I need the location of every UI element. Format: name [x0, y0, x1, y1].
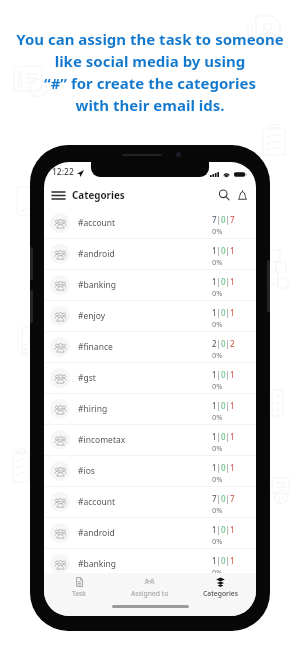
staticText: 2|0|2	[212, 338, 235, 349]
button[interactable]: Search	[215, 186, 233, 204]
button[interactable]: #account	[44, 487, 256, 518]
button[interactable]: #hiring	[44, 394, 256, 425]
button[interactable]: Menu	[49, 185, 67, 205]
staticText: 0%	[212, 474, 223, 484]
staticText: 0%	[212, 567, 223, 577]
staticText: 7|0|7	[212, 493, 235, 504]
staticText: #banking	[78, 279, 116, 291]
staticText: 0%	[212, 288, 223, 298]
staticText: 1|0|1	[212, 431, 235, 442]
button[interactable]: #gst	[44, 363, 256, 394]
button[interactable]: Task	[44, 577, 114, 602]
staticText: #incometax	[78, 434, 126, 446]
staticText: 1|0|1	[212, 400, 235, 411]
button[interactable]: #banking	[44, 270, 256, 301]
button[interactable]: #incometax	[44, 425, 256, 456]
staticText: Task	[72, 589, 86, 598]
button[interactable]: #android	[44, 239, 256, 270]
staticText: #account	[78, 496, 116, 508]
button[interactable]: #ios	[44, 456, 256, 487]
staticText: 1|0|1	[212, 555, 235, 566]
staticText: 1|0|1	[212, 276, 235, 287]
staticText: 7|0|7	[212, 214, 235, 225]
staticText: 1|0|1	[212, 307, 235, 318]
staticText: 0%	[212, 350, 223, 360]
button[interactable]: #enjoy	[44, 301, 256, 332]
staticText: 0%	[212, 257, 223, 267]
button[interactable]: #banking	[44, 549, 256, 580]
staticText: 0%	[212, 381, 223, 391]
staticText: 12:22	[52, 166, 74, 178]
staticText: 1|0|1	[212, 462, 235, 473]
staticText: Assigned to	[131, 589, 169, 598]
button[interactable]: #finance	[44, 332, 256, 363]
staticText: 0%	[212, 443, 223, 453]
staticText: #account	[78, 217, 116, 229]
staticText: 0%	[212, 536, 223, 546]
staticText: 0%	[212, 412, 223, 422]
staticText: You can assign the task to someone like …	[16, 29, 284, 115]
staticText: 1|0|1	[212, 524, 235, 535]
button[interactable]: #account	[44, 208, 256, 239]
button[interactable]: Notifications	[233, 186, 251, 204]
staticText: Categories	[72, 189, 125, 202]
button[interactable]: Categories	[185, 577, 256, 602]
staticText: #enjoy	[78, 310, 106, 322]
button[interactable]: Assigned to	[114, 577, 185, 602]
staticText: #banking	[78, 558, 116, 570]
staticText: #ios	[78, 465, 95, 477]
staticText: 1|0|1	[212, 369, 235, 380]
button[interactable]: #android	[44, 518, 256, 549]
staticText: 0%	[212, 505, 223, 515]
staticText: #android	[78, 527, 115, 539]
staticText: 0%	[212, 319, 223, 329]
staticText: Categories	[203, 589, 238, 598]
staticText: #finance	[78, 341, 113, 353]
staticText: #gst	[78, 372, 96, 384]
staticText: #android	[78, 248, 115, 260]
staticText: 0%	[212, 226, 223, 236]
staticText: #hiring	[78, 403, 108, 415]
staticText: 1|0|1	[212, 245, 235, 256]
